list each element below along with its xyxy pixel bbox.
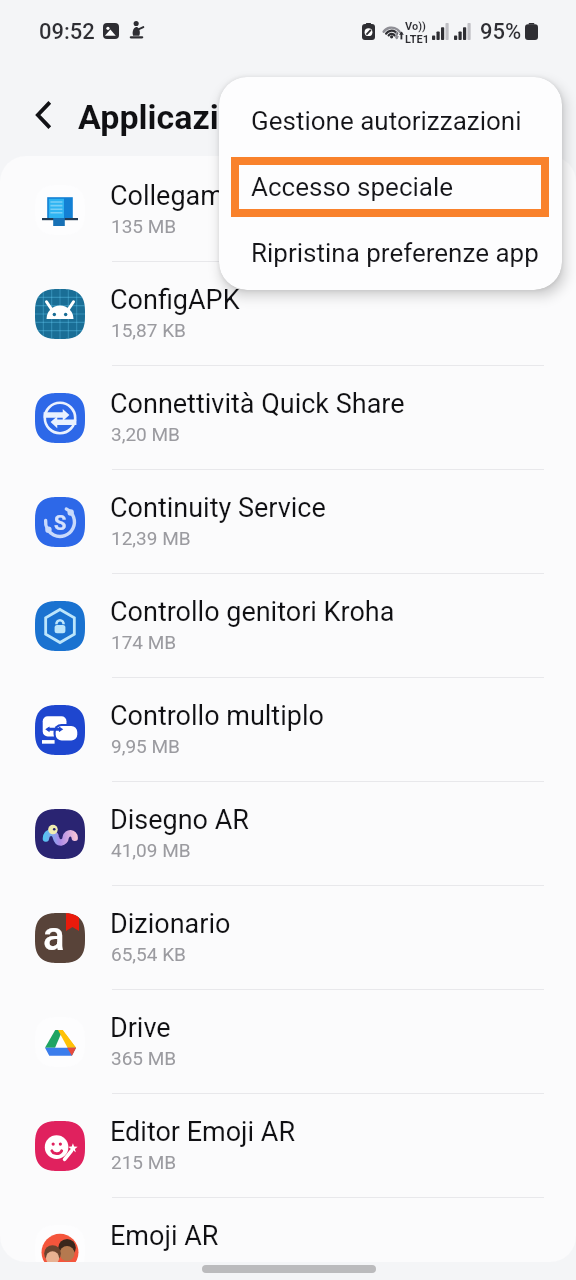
- staticText: 15,87 KB: [111, 319, 186, 341]
- staticText: 9,95 MB: [111, 735, 180, 757]
- button[interactable]: Controllo genitori Kroha: [0, 572, 576, 676]
- button[interactable]: ConfigAPK: [0, 260, 576, 364]
- staticText: Connettività Quick Share: [110, 388, 405, 420]
- staticText: Drive: [110, 1012, 171, 1044]
- button[interactable]: Emoji AR: [0, 1196, 576, 1262]
- button[interactable]: Editor Emoji AR: [0, 1092, 576, 1196]
- button[interactable]: a: [0, 884, 576, 988]
- staticText: 65,54 KB: [111, 943, 186, 965]
- staticText: Continuity Service: [110, 492, 326, 524]
- staticText: LTE1: [405, 33, 430, 46]
- staticText: 365 MB: [111, 1047, 177, 1069]
- staticText: 215 MB: [111, 1151, 177, 1173]
- staticText: Emoji AR: [110, 1220, 219, 1252]
- staticText: 95%: [480, 19, 522, 45]
- staticText: 135 MB: [111, 215, 177, 237]
- button[interactable]: S: [0, 468, 576, 572]
- staticText: Gestione autorizzazioni: [251, 106, 522, 136]
- staticText: 41,09 MB: [111, 839, 191, 861]
- staticText: 3,20 MB: [111, 423, 180, 445]
- staticText: Controllo genitori Kroha: [110, 596, 395, 628]
- staticText: S: [54, 511, 67, 534]
- button[interactable]: Disegno AR: [0, 780, 576, 884]
- button[interactable]: Accesso speciale: [219, 150, 562, 217]
- staticText: Applicazioni: [78, 97, 267, 137]
- button[interactable]: Controllo multiplo: [0, 676, 576, 780]
- staticText: Collegamento a Windows: [110, 180, 416, 212]
- button[interactable]: Drive: [0, 988, 576, 1092]
- staticText: 174 MB: [111, 631, 177, 653]
- staticText: 09:52: [39, 19, 95, 45]
- staticText: 12,39 MB: [111, 527, 191, 549]
- staticText: Vo)): [405, 20, 426, 33]
- button[interactable]: Gestione autorizzazioni: [219, 84, 562, 151]
- button[interactable]: Connettività Quick Share: [0, 364, 576, 468]
- staticText: Editor Emoji AR: [110, 1116, 296, 1148]
- button[interactable]: Indietro: [21, 91, 69, 139]
- staticText: ConfigAPK: [110, 284, 240, 316]
- staticText: Dizionario: [110, 908, 231, 940]
- staticText: a: [43, 913, 65, 960]
- staticText: Disegno AR: [110, 804, 249, 836]
- button[interactable]: Collegamento a Windows: [0, 156, 576, 260]
- staticText: Ripristina preferenze app: [251, 238, 539, 268]
- staticText: Controllo multiplo: [110, 700, 324, 732]
- button[interactable]: Ripristina preferenze app: [219, 216, 562, 283]
- staticText: Accesso speciale: [251, 172, 454, 202]
